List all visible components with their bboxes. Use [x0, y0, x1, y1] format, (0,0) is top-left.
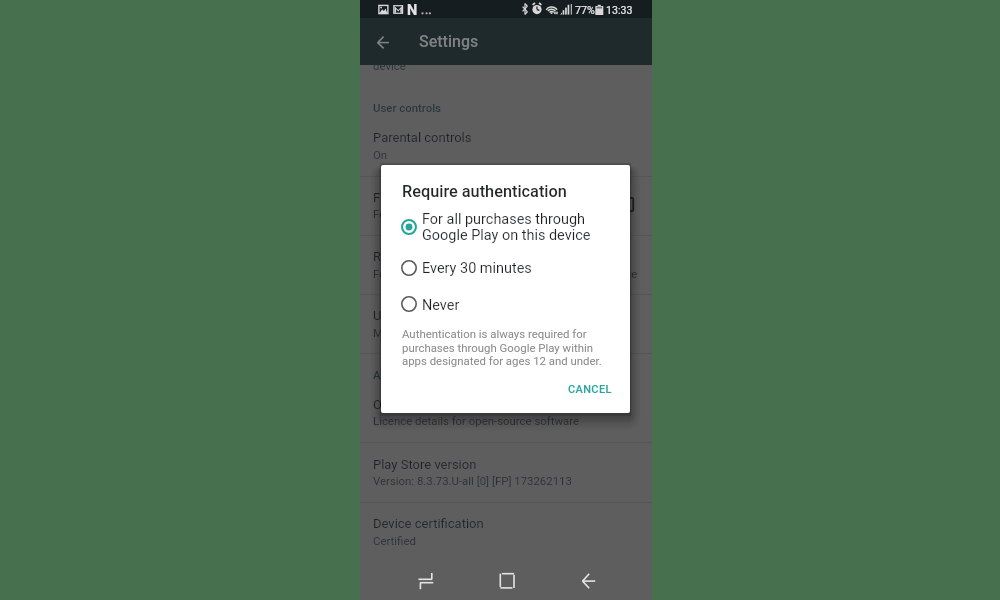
- staticText: Never: [422, 297, 460, 314]
- staticText: Authentication is always required for: [402, 327, 587, 340]
- staticText: Certified: [373, 534, 416, 547]
- button[interactable]: [381, 251, 630, 285]
- button[interactable]: Recent apps: [412, 567, 440, 595]
- button[interactable]: [381, 210, 630, 244]
- staticText: On: [373, 148, 388, 161]
- staticText: Every 30 minutes: [422, 260, 532, 277]
- button[interactable]: [360, 294, 652, 354]
- staticText: User controls: [373, 101, 441, 114]
- button[interactable]: Navigate up: [366, 24, 400, 58]
- staticText: Updates: [373, 308, 421, 323]
- staticText: Device certification: [373, 516, 484, 531]
- staticText: Play Store version: [373, 457, 477, 472]
- staticText: For purchases through Google Play: [373, 207, 551, 220]
- staticText: CANCEL: [568, 383, 612, 396]
- staticText: purchases through Google Play within: [402, 341, 593, 354]
- button[interactable]: [381, 287, 630, 321]
- staticText: Settings: [419, 32, 479, 51]
- staticText: apps designated for ages 12 and under.: [402, 354, 602, 367]
- button[interactable]: [360, 176, 652, 236]
- button[interactable]: [360, 116, 652, 176]
- staticText: Require authentication: [402, 182, 567, 201]
- button[interactable]: [360, 235, 652, 295]
- staticText: Version: 8.3.73.U-all [0] [FP] 173262113: [373, 474, 572, 487]
- staticText: 77%: [575, 4, 595, 16]
- staticText: device: [373, 59, 406, 72]
- staticText: Licence details for open-source software: [373, 414, 580, 427]
- button[interactable]: Home: [494, 567, 516, 589]
- staticText: Manage app updates: [373, 326, 480, 339]
- staticText: Require authentication: [373, 249, 504, 264]
- staticText: Open-source licences: [373, 397, 498, 412]
- staticText: For all purchases through: [422, 211, 585, 228]
- staticText: Parental controls: [373, 130, 472, 145]
- button[interactable]: [360, 383, 652, 443]
- staticText: For all purchases through Google Play on…: [373, 267, 638, 280]
- staticText: N: [407, 2, 418, 19]
- staticText: Google Play on this device: [422, 227, 591, 244]
- button[interactable]: Back: [576, 567, 598, 589]
- button[interactable]: [360, 443, 652, 503]
- staticText: Fingerprint: [373, 190, 436, 205]
- button[interactable]: [360, 502, 652, 562]
- staticText: About: [373, 368, 404, 381]
- staticText: 13:33: [606, 4, 633, 16]
- button[interactable]: CANCEL: [559, 377, 619, 403]
